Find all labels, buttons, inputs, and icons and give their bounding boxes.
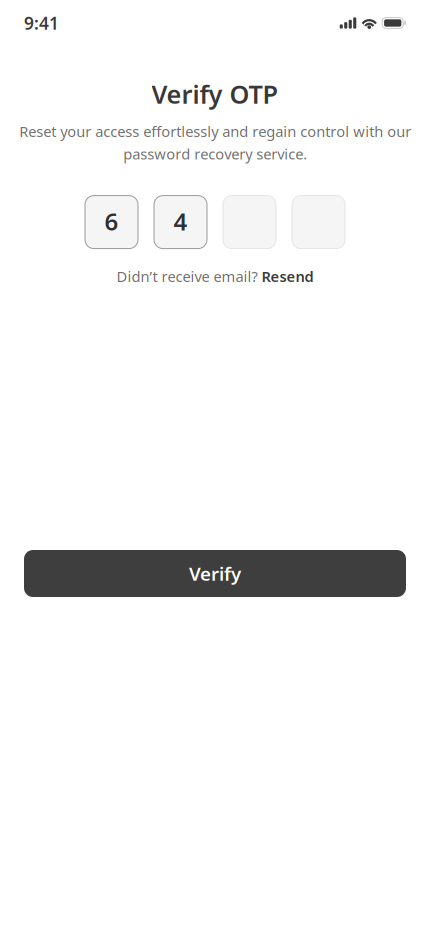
button[interactable]: OTP digit 4 [154, 196, 207, 249]
button[interactable]: OTP digit 6 [85, 196, 138, 249]
staticText: 4 [173, 205, 187, 237]
staticText: 9:41 [24, 11, 59, 34]
staticText: 6 [104, 205, 118, 237]
staticText: Verify [189, 561, 241, 586]
staticText: Verify OTP [151, 77, 278, 111]
staticText: Reset your access effortlessly and regai… [19, 122, 411, 164]
staticText: Resend [261, 267, 313, 286]
button[interactable]: Verify [24, 550, 406, 597]
button[interactable]: Resend [261, 267, 313, 286]
staticText: Didn’t receive email? [116, 267, 261, 286]
